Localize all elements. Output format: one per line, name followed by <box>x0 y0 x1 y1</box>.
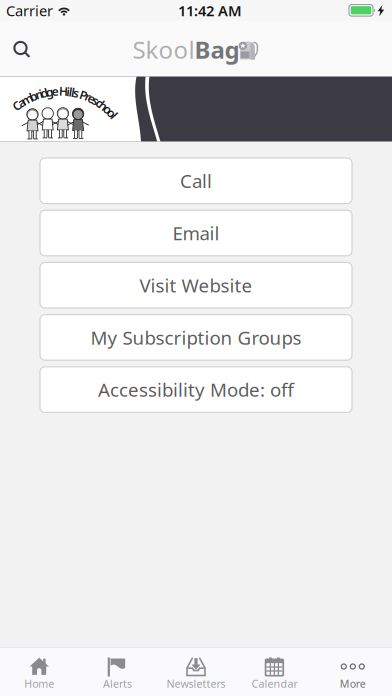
staticText: s <box>93 92 99 108</box>
staticText: o <box>104 101 111 117</box>
staticText: a <box>18 94 25 110</box>
button[interactable]: Newsletters <box>157 648 235 696</box>
button[interactable]: Home <box>0 648 78 696</box>
staticText: Call <box>180 168 212 193</box>
button[interactable]: Email <box>40 210 352 256</box>
staticText: b <box>29 88 37 104</box>
button[interactable]: Search <box>2 27 42 71</box>
staticText: l <box>69 84 72 100</box>
staticText: r <box>35 87 40 103</box>
staticText: Email <box>172 221 219 245</box>
staticText: e <box>88 90 95 106</box>
staticText: Calendar <box>251 676 297 691</box>
staticText: My Subscription Groups <box>90 325 301 350</box>
staticText: Accessibility Mode: off <box>98 377 294 402</box>
staticText: More <box>340 676 366 691</box>
staticText: h <box>100 98 108 114</box>
staticText: Alerts <box>103 676 132 691</box>
staticText: i <box>67 83 70 99</box>
staticText: Bag <box>194 34 239 65</box>
staticText: 11:42 AM <box>178 1 242 20</box>
button[interactable]: Visit Website <box>40 262 352 308</box>
button[interactable]: Accessibility Mode: off <box>40 367 352 412</box>
staticText: Newsletters <box>166 676 225 691</box>
button[interactable]: Alerts <box>78 648 157 696</box>
staticText: C <box>13 98 21 113</box>
staticText: l <box>71 84 74 100</box>
staticText: Visit Website <box>139 273 252 298</box>
button[interactable]: Calendar <box>235 648 314 696</box>
staticText: c <box>96 95 102 111</box>
staticText: P <box>80 87 87 103</box>
staticText: H <box>59 83 68 99</box>
staticText: o <box>108 105 115 121</box>
staticText: Skool <box>132 34 194 65</box>
staticText: l <box>113 108 116 123</box>
staticText: g <box>46 84 54 100</box>
staticText: r <box>85 89 90 104</box>
button[interactable]: More <box>314 648 392 696</box>
staticText: Carrier <box>6 1 53 20</box>
staticText: d <box>40 85 48 101</box>
staticText: i <box>39 86 42 102</box>
staticText: Home <box>24 676 54 691</box>
staticText: s <box>73 85 79 101</box>
button[interactable]: Call <box>40 158 352 204</box>
button[interactable]: My Subscription Groups <box>40 315 352 360</box>
staticText: e <box>52 83 59 99</box>
staticText: m <box>21 91 33 107</box>
